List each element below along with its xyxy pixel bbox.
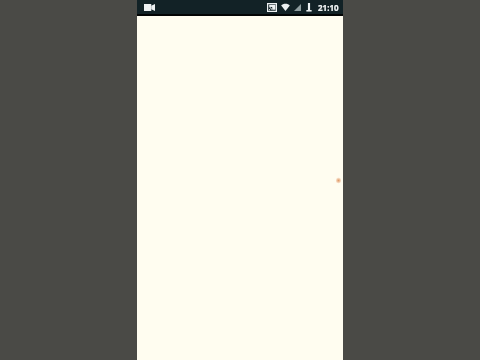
staticText: 21:10 — [318, 2, 339, 13]
button[interactable]: Compose — [333, 172, 343, 190]
